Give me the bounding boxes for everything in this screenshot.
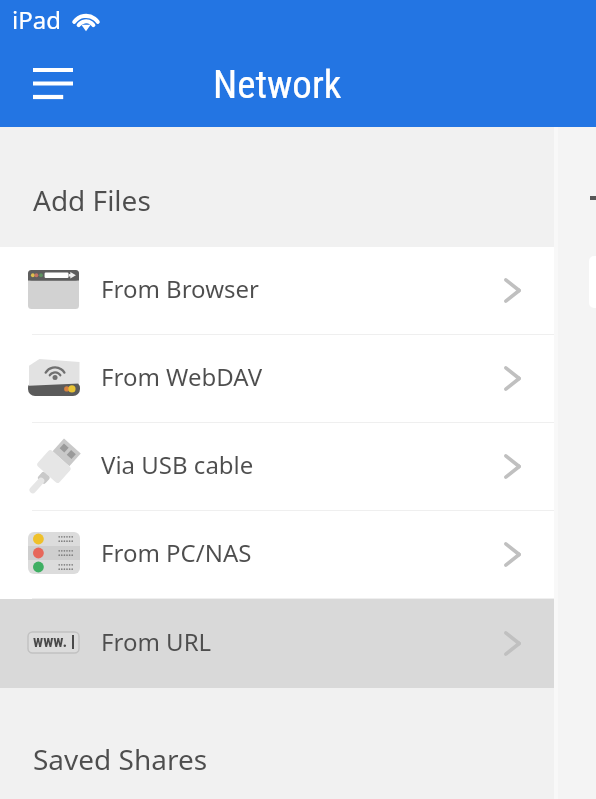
button[interactable]: Open navigation menu xyxy=(10,48,93,118)
button[interactable]: From PC/NAS xyxy=(0,511,554,598)
staticText: Via USB cable xyxy=(101,448,254,481)
button[interactable]: From Browser xyxy=(0,247,554,334)
button[interactable]: Via USB cable xyxy=(0,423,554,510)
staticText: Add Files xyxy=(33,181,151,219)
staticText: From PC/NAS xyxy=(101,536,252,569)
staticText: www. xyxy=(33,632,68,651)
staticText: Saved Shares xyxy=(33,740,208,778)
staticText: From URL xyxy=(101,625,212,658)
staticText: Network xyxy=(213,62,342,108)
button[interactable]: From WebDAV xyxy=(0,335,554,422)
staticText: iPad xyxy=(12,3,61,36)
staticText: From Browser xyxy=(101,272,259,305)
staticText: From WebDAV xyxy=(101,360,263,393)
button[interactable]: www. xyxy=(0,599,554,688)
